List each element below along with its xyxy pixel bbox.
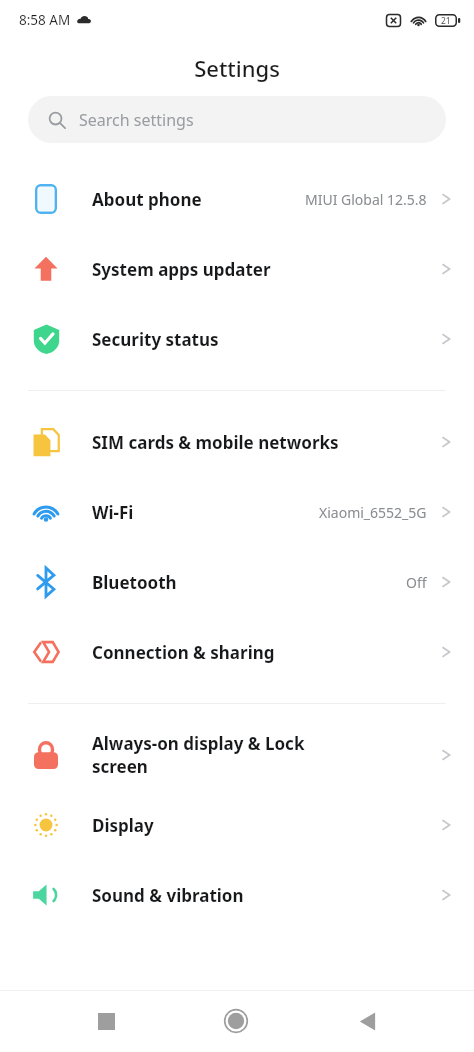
staticText: Xiaomi_6552_5G [319,503,427,522]
button[interactable]: Sound & vibration [0,860,474,930]
staticText: Always-on display & Lock screen [92,732,305,778]
button[interactable]: Connection & sharing [0,617,474,687]
staticText: MIUI Global 12.5.8 [305,190,427,209]
button[interactable]: Home [212,997,260,1045]
button[interactable]: Always-on display & Lock screen [0,720,474,790]
staticText: Display [92,814,154,837]
button[interactable]: Search settings [28,96,446,143]
button[interactable]: System apps updater [0,234,474,304]
staticText: 21 [441,15,451,27]
button[interactable]: Wi-Fi [0,477,474,547]
button[interactable]: Bluetooth [0,547,474,617]
button[interactable]: About phone [0,164,474,234]
staticText: 8:58 AM [19,11,71,29]
button[interactable]: Recents [82,997,130,1045]
button[interactable]: SIM cards & mobile networks [0,407,474,477]
staticText: Search settings [79,109,194,131]
button[interactable]: Display [0,790,474,860]
staticText: SIM cards & mobile networks [92,431,339,454]
button[interactable]: Security status [0,304,474,374]
staticText: About phone [92,188,202,211]
staticText: Wi-Fi [92,501,134,524]
staticText: System apps updater [92,258,271,281]
staticText: Settings [194,53,280,83]
staticText: Bluetooth [92,571,177,594]
staticText: Off [406,573,427,592]
staticText: Security status [92,328,219,351]
button[interactable]: Back [343,997,391,1045]
staticText: Sound & vibration [92,884,244,907]
staticText: Connection & sharing [92,641,275,664]
